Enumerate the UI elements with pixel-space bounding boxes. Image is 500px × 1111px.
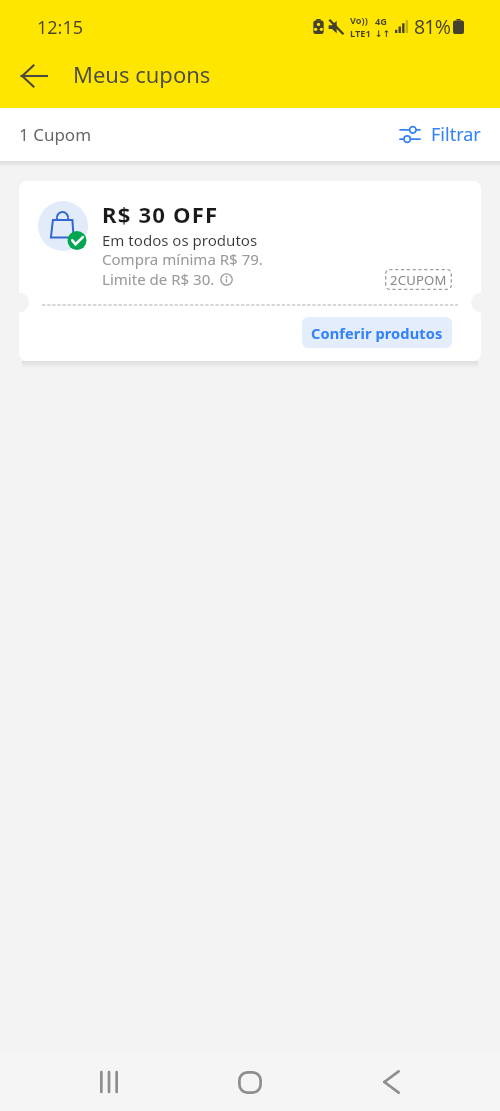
staticText: Limite de R$ 30. [102, 269, 215, 289]
button[interactable]: Back [359, 1053, 423, 1111]
staticText: 81% [414, 13, 451, 40]
staticText: R$ 30 OFF [102, 199, 219, 229]
staticText: Filtrar [431, 122, 481, 147]
staticText: LTE1 [350, 27, 371, 40]
staticText: Vo)) [350, 14, 368, 27]
button[interactable]: Conferir produtos [302, 317, 452, 348]
staticText: 2CUPOM [390, 271, 447, 289]
button[interactable]: Back [10, 52, 58, 100]
staticText: ↓↑ [375, 28, 391, 39]
staticText: Compra mínima R$ 79. [102, 249, 263, 269]
button[interactable]: Recent apps [77, 1053, 141, 1111]
button[interactable]: 2CUPOM [385, 269, 452, 290]
button[interactable]: Home [218, 1053, 282, 1111]
button[interactable]: Filtrar [0, 122, 500, 147]
staticText: 1 Cupom [19, 123, 92, 146]
button[interactable]: R$ 30 OFF [19, 181, 481, 361]
staticText: Em todos os produtos [102, 230, 258, 250]
staticText: 12:15 [37, 15, 84, 40]
staticText: 4G [375, 15, 387, 28]
staticText: Conferir produtos [311, 323, 443, 343]
staticText: Meus cupons [73, 59, 211, 89]
